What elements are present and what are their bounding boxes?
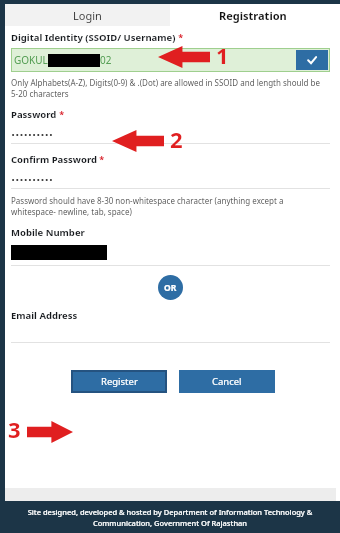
staticText: 1 [216, 40, 229, 70]
button[interactable]: Cancel [179, 370, 275, 393]
staticText: Password [11, 108, 57, 121]
staticText: Confirm Password [11, 153, 97, 166]
staticText: Password should have 8-30 non-whitespace… [11, 195, 330, 217]
staticText: Digital Identity (SSOID/ Username) [11, 31, 176, 44]
staticText: 3 [8, 414, 21, 444]
staticText: * [57, 108, 65, 120]
staticText: OR [164, 282, 177, 294]
button[interactable]: Verify SSOID [296, 50, 328, 70]
button[interactable]: Login [5, 4, 170, 26]
staticText: Cancel [212, 375, 242, 388]
staticText: Email Address [11, 309, 78, 322]
staticText: Registration [219, 8, 287, 23]
staticText: Site designed, developed & hosted by Dep… [18, 507, 322, 528]
staticText: Mobile Number [11, 226, 85, 239]
button[interactable]: Register [73, 372, 165, 391]
staticText: Register [101, 375, 138, 388]
staticText: Login [73, 8, 102, 23]
staticText: Only Alphabets(A-Z), Digits(0-9) & .(Dot… [11, 77, 330, 99]
button[interactable]: Registration [170, 4, 336, 26]
staticText: GOKUL [14, 53, 48, 67]
staticText: * [97, 153, 105, 165]
staticText: 02 [100, 53, 112, 67]
staticText: 2 [170, 124, 183, 154]
staticText: * [176, 31, 184, 43]
